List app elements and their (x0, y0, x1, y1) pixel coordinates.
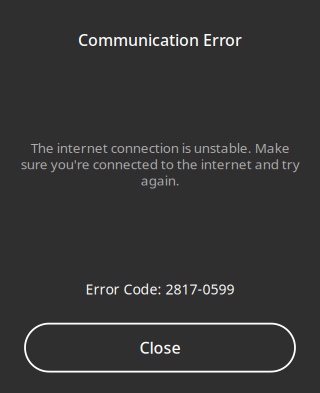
staticText: Communication Error (78, 29, 242, 51)
button[interactable]: Close (25, 324, 295, 372)
staticText: Close (139, 337, 180, 358)
staticText: The internet connection is unstable. Mak… (20, 139, 299, 190)
staticText: Error Code: 2817-0599 (85, 279, 234, 299)
